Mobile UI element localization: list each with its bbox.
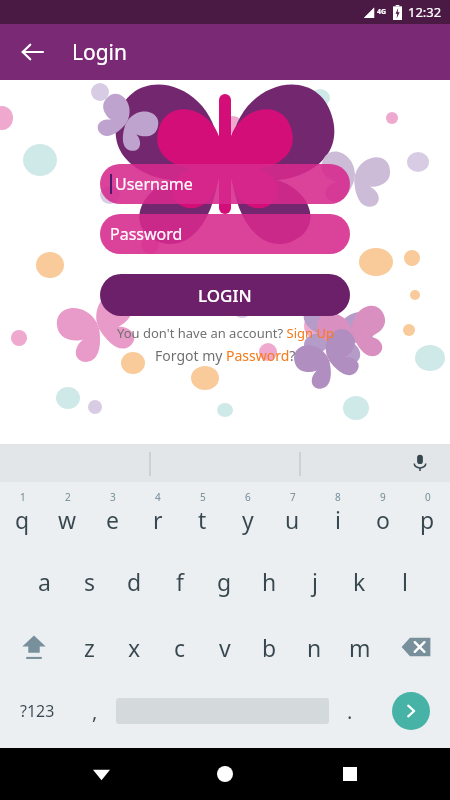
staticText: p xyxy=(420,504,435,535)
button[interactable]: f xyxy=(157,548,202,614)
button[interactable]: . xyxy=(329,680,371,742)
staticText: 12:32 xyxy=(408,3,442,21)
staticText: z xyxy=(84,632,95,663)
button[interactable]: 5 xyxy=(180,482,225,548)
staticText: 8 xyxy=(335,490,341,504)
button[interactable]: 7 xyxy=(270,482,315,548)
staticText: 9 xyxy=(380,490,386,504)
button[interactable]: a xyxy=(22,548,67,614)
button[interactable]: g xyxy=(202,548,247,614)
button[interactable]: j xyxy=(292,548,337,614)
staticText: , xyxy=(92,698,98,725)
staticText: 6 xyxy=(245,490,251,504)
button[interactable]: Space xyxy=(116,694,329,728)
staticText: You don't have an account? Sign Up xyxy=(117,324,334,342)
staticText: w xyxy=(58,504,77,535)
staticText: LOGIN xyxy=(198,284,252,307)
staticText: 1 xyxy=(20,490,26,504)
staticText: u xyxy=(285,504,300,535)
button[interactable]: You don't have an account? Sign Up xyxy=(117,324,334,342)
staticText: i xyxy=(335,504,341,535)
button[interactable]: x xyxy=(112,614,157,680)
staticText: s xyxy=(84,566,96,597)
staticText: x xyxy=(128,632,141,663)
staticText: o xyxy=(376,504,390,535)
button[interactable]: c xyxy=(157,614,202,680)
button[interactable]: d xyxy=(112,548,157,614)
staticText: l xyxy=(402,566,408,597)
button[interactable]: 8 xyxy=(315,482,360,548)
button[interactable]: k xyxy=(337,548,382,614)
staticText: v xyxy=(219,632,231,663)
button[interactable]: s xyxy=(67,548,112,614)
button[interactable]: h xyxy=(247,548,292,614)
staticText: y xyxy=(242,504,254,535)
button[interactable]: , xyxy=(74,680,116,742)
button[interactable]: Back xyxy=(77,750,125,798)
button[interactable]: 1 xyxy=(0,482,45,548)
button[interactable]: n xyxy=(292,614,337,680)
staticText: a xyxy=(38,566,51,597)
button[interactable]: Home xyxy=(201,750,249,798)
button[interactable]: m xyxy=(337,614,382,680)
staticText: d xyxy=(127,566,142,597)
staticText: h xyxy=(262,566,277,597)
staticText: 0 xyxy=(425,490,431,504)
button[interactable]: 0 xyxy=(405,482,450,548)
staticText: t xyxy=(198,504,207,535)
button[interactable]: 2 xyxy=(45,482,90,548)
staticText: 4 xyxy=(155,490,161,504)
staticText: Login xyxy=(72,38,128,67)
staticText: 4G xyxy=(377,7,387,17)
button[interactable]: l xyxy=(382,548,427,614)
staticText: 5 xyxy=(200,490,206,504)
staticText: g xyxy=(217,566,232,597)
button[interactable]: Recent apps xyxy=(326,750,374,798)
button[interactable]: Forgot my Password? xyxy=(155,346,296,365)
button[interactable]: 9 xyxy=(360,482,405,548)
button[interactable]: b xyxy=(247,614,292,680)
staticText: ?123 xyxy=(20,700,55,722)
button[interactable]: Password xyxy=(100,214,350,254)
button[interactable]: Backspace xyxy=(382,614,450,680)
staticText: Password xyxy=(110,223,183,245)
button[interactable]: 4 xyxy=(135,482,180,548)
staticText: j xyxy=(312,566,318,597)
button[interactable]: LOGIN xyxy=(100,274,350,316)
staticText: n xyxy=(307,632,322,663)
button[interactable]: ?123 xyxy=(0,680,74,742)
button[interactable]: v xyxy=(202,614,247,680)
button[interactable]: 3 xyxy=(90,482,135,548)
button[interactable]: Enter xyxy=(371,680,450,742)
staticText: m xyxy=(349,632,371,663)
staticText: k xyxy=(353,566,366,597)
staticText: Forgot my Password? xyxy=(155,346,296,365)
staticText: e xyxy=(106,504,119,535)
button[interactable]: Voice input xyxy=(406,449,434,477)
staticText: Username xyxy=(115,173,193,195)
button[interactable]: 6 xyxy=(225,482,270,548)
button[interactable]: z xyxy=(67,614,112,680)
button[interactable]: Shift xyxy=(0,614,67,680)
staticText: q xyxy=(15,504,30,535)
staticText: 7 xyxy=(290,490,296,504)
staticText: 2 xyxy=(65,490,71,504)
staticText: c xyxy=(174,632,186,663)
staticText: b xyxy=(262,632,277,663)
button[interactable]: Username xyxy=(100,164,350,204)
staticText: 3 xyxy=(110,490,116,504)
staticText: f xyxy=(176,566,184,597)
button[interactable]: Back xyxy=(8,28,56,76)
staticText: r xyxy=(153,504,163,535)
staticText: . xyxy=(347,698,353,725)
